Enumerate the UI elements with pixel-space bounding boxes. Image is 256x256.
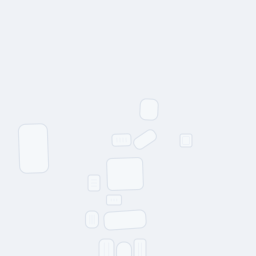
- button[interactable]: Avatar: [116, 242, 131, 256]
- button[interactable]: Grid tile: [180, 134, 192, 147]
- button[interactable]: Pill button: [133, 133, 157, 145]
- button[interactable]: Label chip: [106, 195, 121, 205]
- button[interactable]: Card one: [99, 239, 114, 256]
- button[interactable]: Card two: [134, 239, 146, 256]
- button[interactable]: List tile: [88, 175, 100, 191]
- button[interactable]: Large tile: [107, 158, 143, 190]
- button[interactable]: Segmented control: [112, 134, 131, 146]
- button[interactable]: Featured card: [19, 124, 48, 173]
- button[interactable]: Wide button: [104, 211, 146, 229]
- button[interactable]: Toggle: [85, 211, 98, 228]
- button[interactable]: Tile: [140, 99, 158, 120]
